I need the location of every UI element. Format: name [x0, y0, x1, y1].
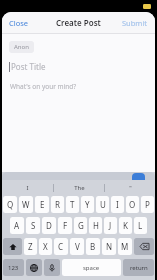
staticText: "	[129, 184, 132, 192]
staticText: Y	[85, 199, 90, 210]
staticText: I	[26, 184, 29, 192]
staticText: C	[58, 241, 64, 252]
button[interactable]: D	[42, 217, 56, 234]
button[interactable]: S	[26, 217, 40, 234]
staticText: The	[74, 184, 85, 192]
staticText: return	[130, 264, 148, 272]
button[interactable]: P	[141, 196, 154, 213]
staticText: P	[145, 199, 150, 210]
button[interactable]: X	[39, 238, 52, 255]
button[interactable]: H	[89, 217, 102, 234]
button[interactable]: G	[74, 217, 87, 234]
staticText: L	[138, 220, 143, 231]
button[interactable]: Anon	[9, 41, 34, 53]
button[interactable]: I	[111, 196, 124, 213]
staticText: O	[129, 199, 136, 210]
staticText: J	[109, 220, 112, 231]
staticText: Post Title	[11, 61, 46, 72]
button[interactable]: Y	[81, 196, 94, 213]
button[interactable]: J	[104, 217, 117, 234]
button[interactable]: Close	[2, 14, 36, 32]
staticText: B	[90, 241, 96, 252]
button[interactable]: "	[105, 182, 155, 194]
staticText: T	[70, 199, 75, 210]
staticText: M	[121, 241, 129, 252]
button[interactable]: E	[35, 196, 49, 213]
staticText: W	[22, 199, 30, 210]
button[interactable]: A	[10, 217, 24, 234]
button[interactable]: F	[58, 217, 72, 234]
button[interactable]: I	[2, 182, 53, 194]
staticText: Submit	[122, 18, 148, 28]
button[interactable]: Z	[24, 238, 37, 255]
button[interactable]: L	[134, 217, 147, 234]
button[interactable]: return	[123, 259, 154, 276]
staticText: space	[83, 264, 100, 272]
button[interactable]: space	[62, 259, 121, 276]
button[interactable]: 123	[3, 259, 24, 276]
staticText: U	[100, 199, 106, 210]
staticText: Anon	[14, 43, 29, 51]
button[interactable]: Dictate	[44, 259, 60, 276]
button[interactable]: Submit	[115, 14, 155, 32]
button[interactable]: Backspace	[134, 238, 154, 255]
staticText: V	[75, 241, 80, 252]
button[interactable]: R	[51, 196, 64, 213]
button[interactable]: Post Title	[2, 59, 155, 74]
button[interactable]: Q	[3, 196, 17, 213]
button[interactable]: T	[66, 196, 79, 213]
staticText: S	[31, 220, 36, 231]
button[interactable]: K	[119, 217, 132, 234]
button[interactable]: O	[126, 196, 139, 213]
staticText: Close	[9, 18, 29, 28]
button[interactable]: W	[19, 196, 33, 213]
staticText: G	[78, 220, 84, 231]
button[interactable]: B	[86, 238, 100, 255]
staticText: Q	[7, 199, 14, 210]
staticText: I	[116, 199, 119, 210]
staticText: R	[55, 199, 60, 210]
button[interactable]: The	[54, 182, 104, 194]
staticText: F	[63, 220, 68, 231]
button[interactable]: Suggestion	[132, 173, 145, 180]
button[interactable]: M	[118, 238, 132, 255]
button[interactable]: V	[70, 238, 84, 255]
staticText: Create Post	[56, 17, 101, 28]
staticText: X	[43, 241, 48, 252]
button[interactable]: C	[54, 238, 68, 255]
staticText: 123	[8, 264, 19, 272]
staticText: Z	[28, 241, 33, 252]
staticText: D	[46, 220, 52, 231]
staticText: What's on your mind?	[10, 82, 77, 91]
button[interactable]: Shift	[3, 238, 22, 255]
staticText: K	[123, 220, 128, 231]
button[interactable]: N	[102, 238, 116, 255]
staticText: E	[40, 199, 45, 210]
button[interactable]: Switch keyboard	[26, 259, 42, 276]
staticText: A	[14, 220, 20, 231]
button[interactable]: What's on your mind?	[2, 82, 155, 172]
staticText: H	[93, 220, 99, 231]
staticText: N	[106, 241, 113, 252]
button[interactable]: U	[96, 196, 109, 213]
